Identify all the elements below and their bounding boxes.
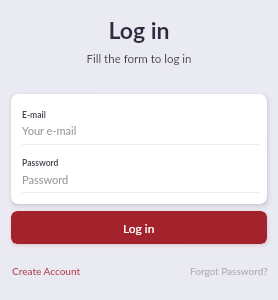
button[interactable]: Your e-mail xyxy=(22,124,77,137)
staticText: Log in xyxy=(123,221,155,235)
button[interactable]: Log in xyxy=(11,211,267,244)
button[interactable]: Forgot Password? xyxy=(190,265,268,277)
staticText: E-mail xyxy=(22,110,46,120)
staticText: Fill the form to log in xyxy=(0,52,278,66)
staticText: Log in xyxy=(0,16,278,44)
staticText: Password xyxy=(22,158,59,168)
button[interactable]: Password xyxy=(22,173,69,186)
button[interactable]: Create Account xyxy=(12,265,81,277)
